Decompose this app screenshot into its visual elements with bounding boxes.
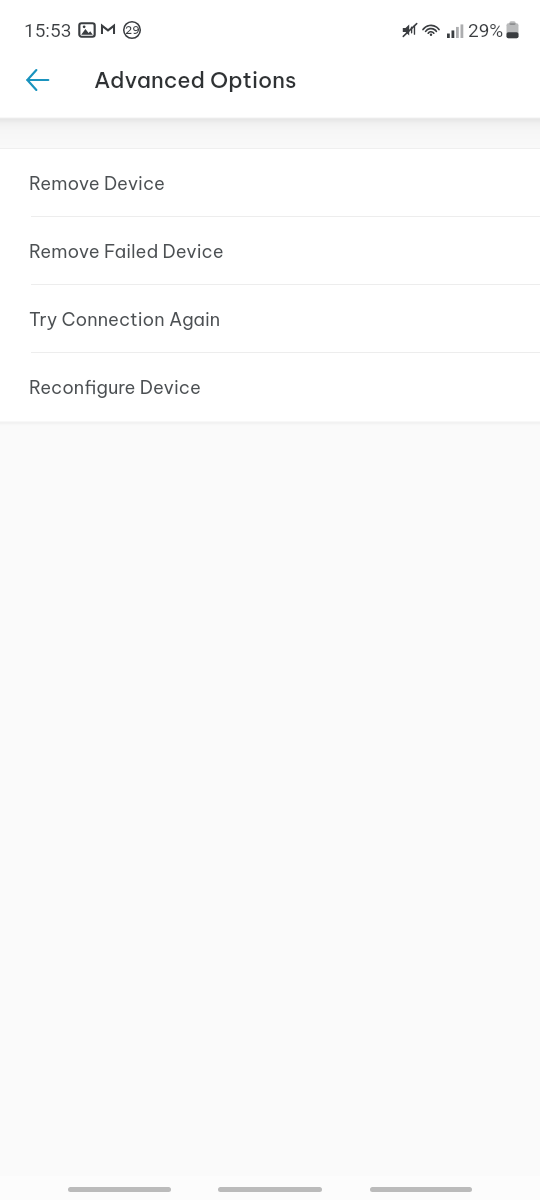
staticText: Reconfigure Device xyxy=(29,376,201,399)
button[interactable]: Navigate up xyxy=(13,56,61,104)
staticText: Advanced Options xyxy=(94,66,297,94)
button[interactable]: Home xyxy=(218,1187,322,1192)
button[interactable]: Try Connection Again xyxy=(0,285,540,353)
staticText: Remove Device xyxy=(29,172,165,195)
button[interactable]: Back xyxy=(68,1187,171,1192)
staticText: Try Connection Again xyxy=(29,308,221,331)
button[interactable]: Remove Device xyxy=(0,149,540,217)
staticText: Remove Failed Device xyxy=(29,240,224,263)
staticText: 29 xyxy=(125,23,140,37)
staticText: 29% xyxy=(468,19,504,41)
button[interactable]: Recent apps xyxy=(370,1187,472,1192)
staticText: 15:53 xyxy=(24,19,72,41)
button[interactable]: Reconfigure Device xyxy=(0,353,540,421)
button[interactable]: Remove Failed Device xyxy=(0,217,540,285)
